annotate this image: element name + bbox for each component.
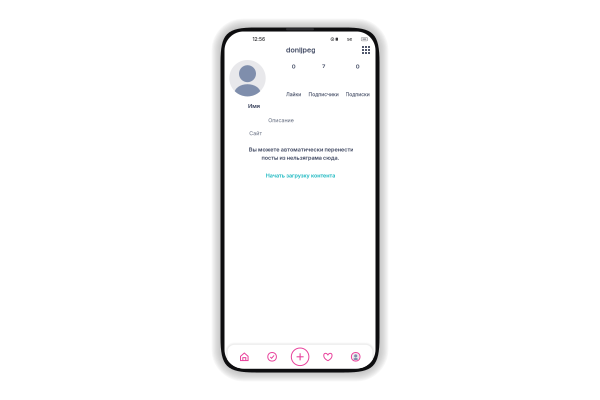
- staticText: 56: [340, 29, 360, 49]
- staticText: donijpeg: [241, 33, 360, 67]
- staticText: Лайки: [263, 83, 324, 106]
- staticText: Сайт: [230, 120, 281, 146]
- staticText: 7: [317, 52, 330, 81]
- staticText: Подписки: [309, 83, 406, 106]
- button[interactable]: Create post: [287, 345, 313, 369]
- staticText: 0: [286, 52, 301, 81]
- staticText: Подписчики: [263, 83, 384, 106]
- staticText: 12:56: [234, 28, 284, 51]
- button[interactable]: Grid view: [359, 43, 373, 57]
- button[interactable]: Home: [231, 345, 257, 369]
- button[interactable]: Activity: [259, 345, 285, 369]
- staticText: Описание: [230, 107, 332, 133]
- staticText: посты из нельзяграма сюда.: [145, 145, 456, 171]
- staticText: Начать загрузку контента: [162, 162, 440, 189]
- staticText: Имя: [230, 92, 278, 120]
- staticText: 0: [350, 52, 365, 81]
- staticText: Вы можете автоматически перенести: [91, 136, 510, 163]
- button[interactable]: Начать загрузку контента: [156, 159, 446, 192]
- button[interactable]: Likes: [315, 345, 341, 369]
- button[interactable]: Profile: [343, 345, 369, 369]
